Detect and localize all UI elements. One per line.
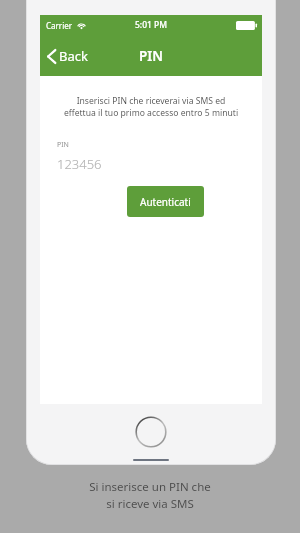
staticText: Inserisci PIN che riceverai via SMS ed e… <box>52 95 250 119</box>
button[interactable]: Back <box>40 41 98 71</box>
staticText: 5:01 PM <box>135 19 168 31</box>
button[interactable]: Home <box>135 416 167 448</box>
staticText: Carrier <box>46 20 73 31</box>
staticText: Back <box>59 47 88 65</box>
staticText: Si inserisce un PIN che si riceve via SM… <box>0 479 300 511</box>
staticText: 123456 <box>57 155 102 173</box>
staticText: PIN <box>57 140 69 150</box>
staticText: PIN <box>139 47 164 65</box>
staticText: Autenticati <box>140 195 191 209</box>
button[interactable]: Autenticati <box>127 186 204 217</box>
